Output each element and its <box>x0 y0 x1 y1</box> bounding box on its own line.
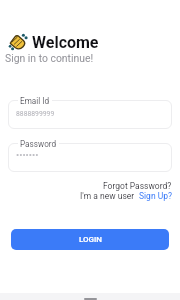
button[interactable]: Forgot Password? <box>103 181 172 191</box>
staticText: I'm a new user <box>80 191 139 201</box>
button[interactable]: LOGIN <box>11 229 169 250</box>
staticText: Password <box>20 139 57 149</box>
staticText: LOGIN <box>79 235 102 244</box>
staticText: 8888899999 <box>16 110 55 118</box>
button[interactable]: Sign Up? <box>139 191 172 201</box>
staticText: Welcome <box>32 33 99 52</box>
staticText: Email Id <box>20 96 50 106</box>
staticText: ••••••• <box>16 149 39 160</box>
staticText: Sign in to continue! <box>5 52 94 64</box>
